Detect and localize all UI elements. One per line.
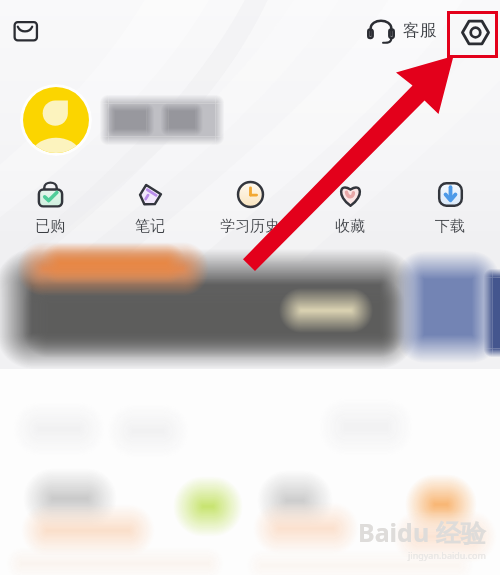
button[interactable]: 客服 (364, 13, 441, 47)
staticText: 笔记 (135, 217, 165, 236)
staticText: 客服 (403, 20, 437, 41)
button[interactable]: 收藏 (300, 178, 400, 238)
button[interactable]: 学习历史 (200, 178, 300, 238)
button[interactable] (0, 241, 500, 369)
staticText: 收藏 (335, 217, 365, 236)
button[interactable]: 已购 (0, 178, 100, 238)
staticText: jingyan.baidu.com (408, 549, 486, 561)
staticText: 下载 (435, 217, 465, 236)
staticText: 学习历史 (220, 217, 280, 236)
button[interactable]: Settings (455, 12, 496, 53)
staticText: 已购 (35, 217, 65, 236)
button[interactable] (20, 84, 500, 156)
button[interactable]: 下载 (400, 178, 500, 238)
button[interactable]: 笔记 (100, 178, 200, 238)
staticText: Baidu 经验 (358, 515, 486, 549)
button[interactable]: Messages (5, 11, 45, 51)
